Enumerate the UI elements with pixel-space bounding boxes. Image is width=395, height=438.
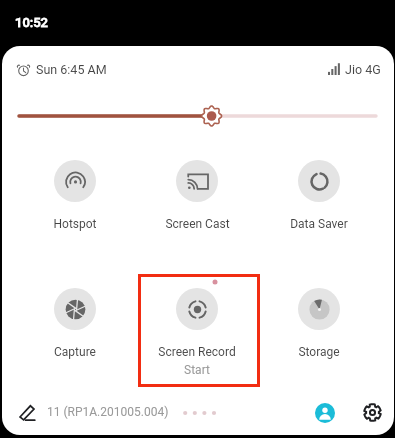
staticText: Jio 4G — [345, 62, 381, 77]
button[interactable]: User account — [315, 403, 335, 423]
button[interactable]: Data Saver — [260, 155, 378, 231]
staticText: Hotspot — [53, 217, 97, 231]
button[interactable]: Capture — [16, 283, 134, 359]
staticText: Screen Cast — [165, 217, 230, 231]
button[interactable]: Storage — [260, 283, 378, 359]
button[interactable]: Screen Record — [138, 283, 256, 377]
button[interactable]: Edit — [18, 403, 38, 423]
button[interactable]: Screen Cast — [138, 155, 256, 231]
staticText: Sun 6:45 AM — [36, 62, 107, 77]
button[interactable]: Sun 6:45 AM — [17, 59, 107, 79]
button[interactable]: Settings — [363, 403, 382, 422]
button[interactable]: Jio 4G — [328, 59, 381, 79]
staticText: 10:52 — [15, 15, 49, 30]
button[interactable] — [2, 102, 394, 130]
staticText: Data Saver — [290, 217, 348, 231]
staticText: Screen Record — [158, 345, 236, 359]
staticText: Capture — [54, 345, 96, 359]
button[interactable]: Hotspot — [16, 155, 134, 231]
staticText: Start — [184, 363, 210, 377]
staticText: Storage — [298, 345, 340, 359]
staticText: 11 (RP1A.201005.004) — [47, 405, 169, 419]
